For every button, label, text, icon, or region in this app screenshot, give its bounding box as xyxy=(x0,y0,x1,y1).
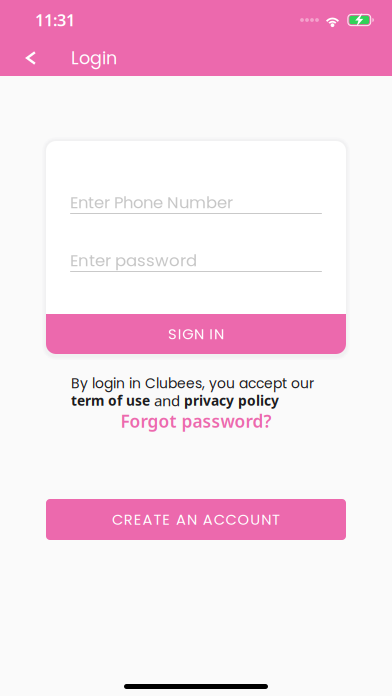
staticText: CREATE AN ACCOUNT xyxy=(112,509,280,530)
staticText: By login in Clubees, you accept our xyxy=(71,374,314,393)
staticText: Enter password xyxy=(70,249,197,272)
staticText: Enter Phone Number xyxy=(70,191,233,214)
staticText: term of use xyxy=(71,391,150,410)
button[interactable]: SIGN IN xyxy=(46,314,346,354)
staticText: privacy policy xyxy=(184,391,279,410)
button[interactable]: Back xyxy=(16,43,46,73)
button[interactable]: CREATE AN ACCOUNT xyxy=(46,499,346,540)
staticText: and xyxy=(150,390,184,411)
button[interactable]: Forgot password? xyxy=(0,412,392,430)
staticText: SIGN IN xyxy=(168,324,224,344)
staticText: Login xyxy=(71,46,117,70)
staticText: Forgot password? xyxy=(120,409,271,433)
staticText: 11:31 xyxy=(35,9,75,31)
